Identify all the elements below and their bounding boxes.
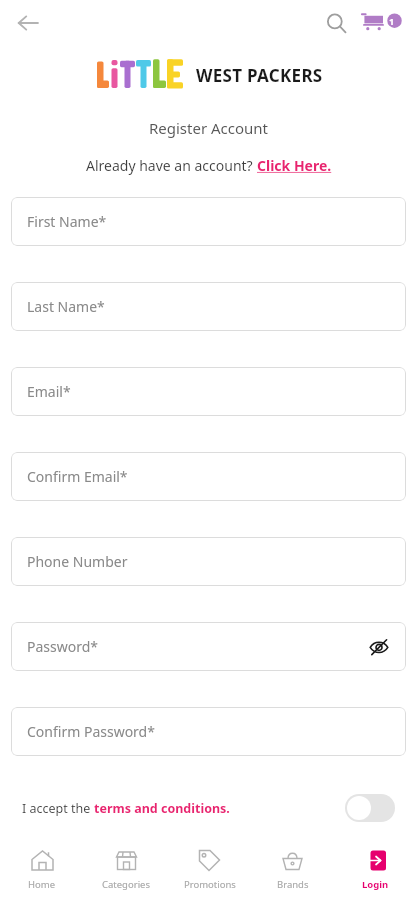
staticText: Login — [362, 878, 389, 891]
button[interactable]: Login — [334, 838, 417, 900]
staticText: Brands — [277, 878, 309, 891]
staticText: Click Here. — [257, 156, 332, 175]
button[interactable]: Promotions — [168, 838, 251, 900]
staticText: Confirm Email* — [27, 467, 128, 486]
button[interactable]: Back — [8, 3, 48, 43]
button[interactable]: Phone Number — [11, 537, 406, 586]
staticText: WEST PACKERS — [196, 64, 323, 87]
button[interactable]: Home — [0, 838, 84, 900]
button[interactable]: I accept the — [22, 800, 345, 817]
staticText: Home — [28, 878, 56, 891]
staticText: 1 — [389, 15, 395, 27]
button[interactable]: Categories — [84, 838, 168, 900]
staticText: Confirm Password* — [27, 722, 155, 741]
button[interactable]: Brands — [251, 838, 334, 900]
staticText: Already have an account? — [86, 156, 257, 175]
button[interactable]: Password* — [11, 622, 406, 671]
button[interactable]: Confirm Password* — [11, 707, 406, 756]
staticText: Promotions — [184, 878, 236, 891]
staticText: First Name* — [27, 212, 107, 231]
staticText: Email* — [27, 382, 71, 401]
staticText: Phone Number — [27, 552, 128, 571]
button[interactable]: Email* — [11, 367, 406, 416]
button[interactable]: Search — [317, 4, 355, 42]
staticText: terms and conditions. — [94, 800, 230, 817]
button[interactable]: Click Here. — [257, 156, 332, 175]
staticText: Last Name* — [27, 297, 105, 316]
staticText: I accept the — [22, 800, 94, 817]
button[interactable]: Show password — [364, 632, 394, 662]
staticText: Password* — [27, 637, 99, 656]
button[interactable]: Accept terms toggle — [345, 794, 395, 822]
button[interactable]: Confirm Email* — [11, 452, 406, 501]
staticText: Register Account — [0, 118, 417, 138]
button[interactable]: Cart, 1 item — [359, 4, 407, 42]
button[interactable]: First Name* — [11, 197, 406, 246]
button[interactable]: Last Name* — [11, 282, 406, 331]
staticText: Categories — [102, 878, 150, 891]
